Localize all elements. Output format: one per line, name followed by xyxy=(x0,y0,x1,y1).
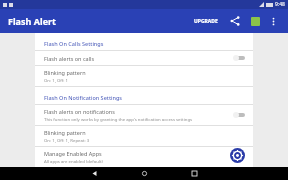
button[interactable]: Rate app xyxy=(247,13,263,29)
staticText: On: 1, Off: 1 xyxy=(44,77,69,83)
staticText: 9:48 xyxy=(275,1,285,8)
staticText: Flash On Calls Settings xyxy=(44,40,104,47)
staticText: Flash alerts on calls xyxy=(44,55,95,62)
button[interactable]: UPGRADE xyxy=(191,16,221,27)
staticText: Flash Alert xyxy=(8,15,56,27)
staticText: Manage Enabled Apps xyxy=(44,150,102,157)
button[interactable]: More options xyxy=(266,14,280,28)
button[interactable]: Settings xyxy=(230,148,245,163)
staticText: Flash alerts on notifications xyxy=(44,108,115,115)
staticText: All apps are enabled (default) xyxy=(44,158,103,164)
staticText: UPGRADE xyxy=(194,18,218,25)
button[interactable]: Blinking pattern xyxy=(35,126,253,147)
staticText: Blinking pattern xyxy=(44,69,86,76)
staticText: On: 1, Off: 1, Repeat: 3 xyxy=(44,137,90,143)
button[interactable]: Home xyxy=(131,167,157,180)
button[interactable]: Toggle xyxy=(233,54,247,62)
button[interactable]: Share xyxy=(227,13,243,29)
staticText: Flash On Notification Settings xyxy=(44,94,123,101)
staticText: Blinking pattern xyxy=(44,129,86,136)
button[interactable]: Recent apps xyxy=(181,167,207,180)
button[interactable]: Toggle xyxy=(233,111,247,119)
button[interactable]: Flash alerts on notifications xyxy=(35,105,253,126)
button[interactable]: Back xyxy=(81,167,107,180)
button[interactable]: Blinking pattern xyxy=(35,66,253,87)
button[interactable]: Manage Enabled Apps xyxy=(35,147,253,167)
staticText: This function only works by granting the… xyxy=(44,116,193,122)
button[interactable]: Flash alerts on calls xyxy=(35,51,253,66)
